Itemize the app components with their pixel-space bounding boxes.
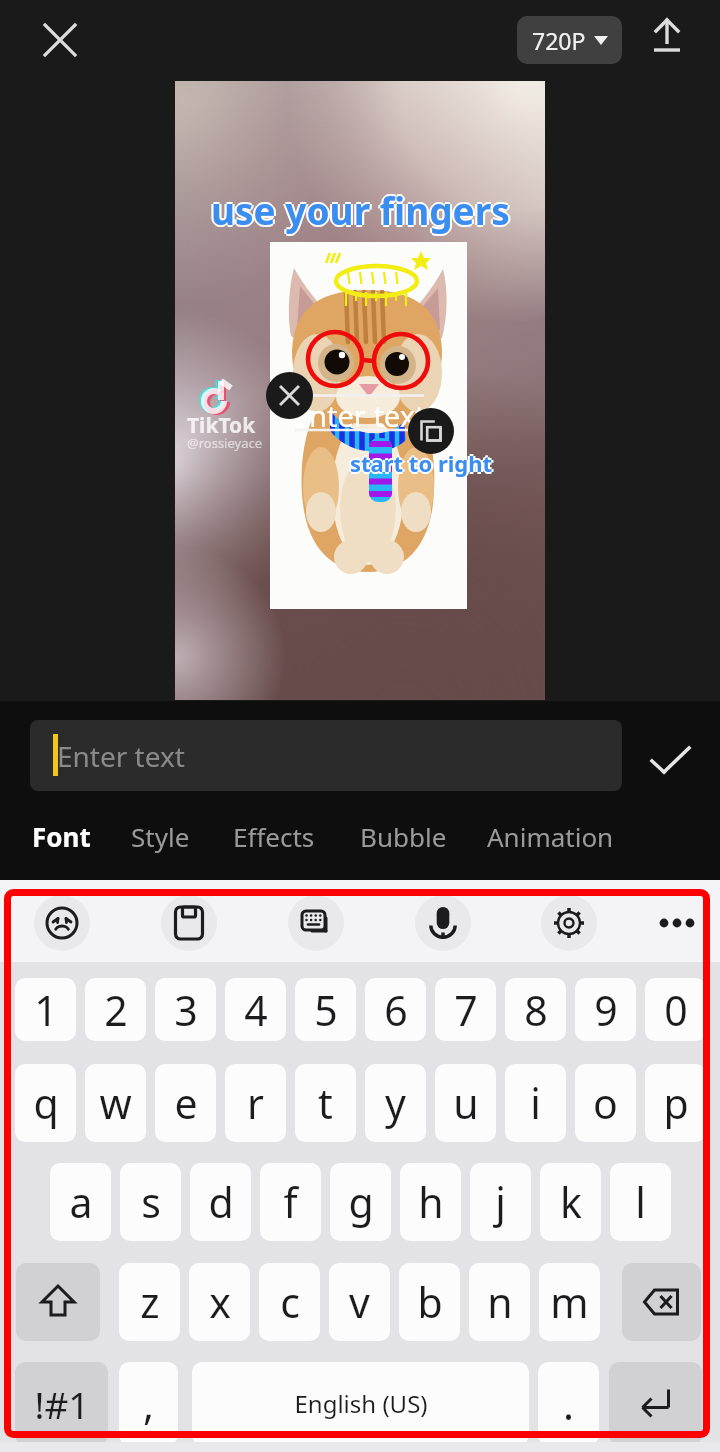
button[interactable]: u — [435, 1064, 496, 1142]
button[interactable]: !#1 — [15, 1362, 108, 1445]
button[interactable]: Enter text — [30, 720, 622, 791]
button[interactable]: 6 — [365, 978, 426, 1041]
staticText: u — [453, 1075, 479, 1131]
button[interactable]: Emoji — [34, 895, 90, 951]
button[interactable]: k — [540, 1163, 601, 1241]
staticText: 0 — [664, 982, 688, 1038]
button[interactable]: 720P — [517, 16, 622, 64]
staticText: c — [280, 1274, 300, 1330]
button[interactable]: w — [85, 1064, 146, 1142]
button[interactable]: Settings — [541, 895, 597, 951]
button[interactable]: . — [538, 1362, 599, 1445]
button[interactable]: q — [15, 1064, 76, 1142]
staticText: 7 — [454, 982, 478, 1038]
button[interactable]: n — [469, 1263, 530, 1341]
staticText: h — [418, 1174, 444, 1230]
button[interactable]: Animation — [487, 819, 614, 854]
button[interactable]: Effects — [233, 819, 315, 854]
staticText: English (US) — [294, 1387, 428, 1420]
staticText: !#1 — [34, 1379, 90, 1429]
button[interactable]: Remove text — [266, 372, 313, 419]
button[interactable]: v — [329, 1263, 390, 1341]
button[interactable]: z — [119, 1263, 180, 1341]
staticText: p — [663, 1075, 689, 1131]
staticText: v — [349, 1274, 370, 1330]
button[interactable]: c — [259, 1263, 320, 1341]
staticText: a — [69, 1174, 93, 1230]
button[interactable]: , — [119, 1362, 178, 1445]
button[interactable]: 5 — [295, 978, 356, 1041]
staticText: start to right — [348, 448, 491, 478]
button[interactable]: English (US) — [192, 1362, 529, 1445]
button[interactable]: Confirm — [640, 731, 702, 793]
button[interactable]: Voice input — [415, 895, 471, 951]
staticText: 5 — [314, 982, 338, 1038]
button[interactable]: f — [260, 1163, 321, 1241]
button[interactable]: Close — [28, 8, 92, 72]
button[interactable]: 9 — [575, 978, 636, 1041]
button[interactable]: a — [50, 1163, 111, 1241]
staticText: use your fingers — [211, 187, 510, 237]
button[interactable]: x — [189, 1263, 250, 1341]
button[interactable]: 8 — [505, 978, 566, 1041]
staticText: use your fingers — [211, 183, 510, 233]
staticText: Enter text — [293, 396, 426, 430]
button[interactable]: b — [399, 1263, 460, 1341]
button[interactable]: 1 — [15, 978, 76, 1041]
button[interactable]: 3 — [155, 978, 216, 1041]
button[interactable]: p — [645, 1064, 706, 1142]
button[interactable]: l — [610, 1163, 671, 1241]
button[interactable]: More options — [649, 895, 705, 951]
button[interactable]: Bubble — [360, 819, 447, 854]
staticText: 3 — [174, 982, 198, 1038]
staticText: . — [563, 1376, 574, 1432]
staticText: f — [283, 1174, 298, 1230]
button[interactable]: Style — [131, 819, 190, 854]
button[interactable]: g — [330, 1163, 391, 1241]
staticText: m — [550, 1274, 589, 1330]
button[interactable]: d — [190, 1163, 251, 1241]
staticText: y — [385, 1075, 406, 1131]
button[interactable]: 0 — [645, 978, 706, 1041]
button[interactable]: r — [225, 1064, 286, 1142]
button[interactable]: Enter — [609, 1362, 702, 1445]
staticText: start to right — [352, 448, 495, 478]
button[interactable]: Switch keyboard — [288, 895, 344, 951]
button[interactable]: Font — [32, 819, 91, 854]
button[interactable]: Duplicate text — [408, 408, 454, 454]
button[interactable]: 4 — [225, 978, 286, 1041]
staticText: start to right — [350, 450, 493, 480]
button[interactable]: Clipboard — [161, 895, 217, 951]
staticText: 6 — [384, 982, 408, 1038]
staticText: 1 — [34, 982, 58, 1038]
button[interactable]: y — [365, 1064, 426, 1142]
staticText: Bubble — [360, 819, 447, 854]
staticText: x — [209, 1274, 231, 1330]
staticText: Effects — [233, 819, 315, 854]
staticText: use your fingers — [213, 185, 512, 235]
button[interactable]: t — [295, 1064, 356, 1142]
staticText: q — [33, 1075, 59, 1131]
staticText: e — [174, 1075, 198, 1131]
staticText: Style — [131, 819, 190, 854]
staticText: t — [318, 1075, 333, 1131]
staticText: n — [487, 1274, 513, 1330]
button[interactable]: e — [155, 1064, 216, 1142]
staticText: z — [140, 1274, 160, 1330]
staticText: 9 — [594, 982, 618, 1038]
button[interactable]: h — [400, 1163, 461, 1241]
button[interactable]: s — [120, 1163, 181, 1241]
staticText: k — [560, 1174, 582, 1230]
button[interactable]: j — [470, 1163, 531, 1241]
button[interactable]: 7 — [435, 978, 496, 1041]
button[interactable]: Shift — [16, 1263, 100, 1341]
button[interactable]: m — [539, 1263, 600, 1341]
button[interactable]: Backspace — [622, 1263, 701, 1341]
button[interactable]: i — [505, 1064, 566, 1142]
button[interactable]: 2 — [85, 978, 146, 1041]
button[interactable]: o — [575, 1064, 636, 1142]
staticText: l — [635, 1174, 646, 1230]
button[interactable]: Export — [635, 8, 699, 72]
staticText: g — [348, 1174, 374, 1230]
staticText: i — [530, 1075, 541, 1131]
